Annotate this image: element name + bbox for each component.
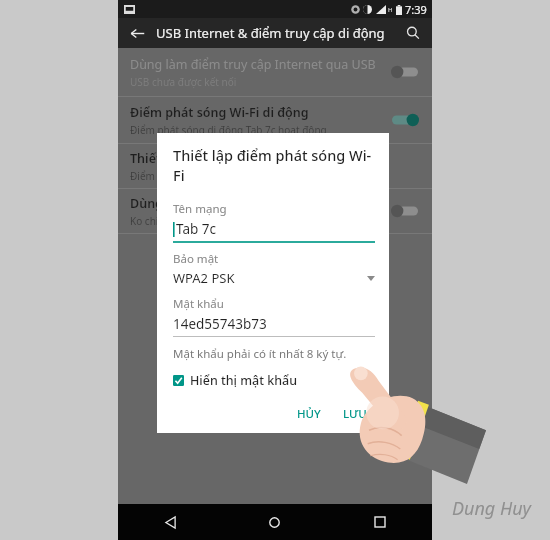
staticText: Thiết lập điểm phát sóng Wi-Fi xyxy=(173,145,375,185)
staticText: USB chưa được kết nối xyxy=(130,75,237,89)
staticText: Tab 7c xyxy=(176,220,217,238)
button[interactable]: WPA2 PSK xyxy=(173,269,375,287)
staticText: USB Internet & điểm truy cập di động xyxy=(156,24,385,42)
staticText: Điểm phát sóng di động Tab 7c hoạt động xyxy=(130,123,327,137)
staticText: Dùng làm điểm truy cập Internet qua USB xyxy=(130,56,376,73)
staticText: 14ed55743b73 xyxy=(173,315,267,333)
button[interactable]: HỦY xyxy=(289,401,329,427)
button[interactable]: Search xyxy=(394,18,432,48)
staticText: Mật khẩu phải có ít nhất 8 ký tự. xyxy=(173,346,347,362)
button[interactable]: Dùng làm điểm truy cập Bluetooth xyxy=(118,189,432,233)
button[interactable]: Home xyxy=(222,504,327,540)
staticText: H xyxy=(388,6,393,14)
button[interactable]: Back xyxy=(118,18,156,48)
button[interactable]: Thiết lập điểm phát sóng Wi-Fi xyxy=(118,144,432,188)
staticText: WPA2 PSK xyxy=(173,269,235,287)
staticText: Điểm phát sóng Wi-Fi di động xyxy=(130,104,309,121)
staticText: LƯU xyxy=(343,406,367,422)
staticText: Tên mạng xyxy=(173,201,227,217)
staticText: Dùng làm điểm truy cập Bluetooth xyxy=(130,195,341,212)
button[interactable]: Recent apps xyxy=(327,504,432,540)
staticText: Mật khẩu xyxy=(173,296,224,312)
other: Pointing hand xyxy=(350,366,486,500)
staticText: Hiển thị mật khẩu xyxy=(190,372,298,389)
staticText: Ko chia sẻ kết nối Internet xyxy=(130,214,253,228)
button[interactable]: LƯU xyxy=(335,401,375,427)
button[interactable]: Hiển thị mật khẩu xyxy=(173,372,375,389)
button[interactable]: Điểm phát sóng Wi-Fi di động xyxy=(118,97,432,143)
button[interactable]: Dùng làm điểm truy cập Internet qua USB xyxy=(118,48,432,96)
staticText: HỦY xyxy=(297,406,321,422)
button[interactable]: Back xyxy=(118,504,222,540)
button[interactable]: Toggle xyxy=(388,59,422,85)
staticText: Điểm phát sóng Wi-Fi di động xyxy=(130,169,269,183)
button[interactable]: Toggle xyxy=(388,107,422,133)
staticText: Dung Huy xyxy=(452,496,532,521)
button[interactable]: Toggle xyxy=(388,198,422,224)
staticText: 7:39 xyxy=(405,2,427,17)
staticText: Thiết lập điểm phát sóng Wi-Fi xyxy=(130,150,315,167)
staticText: Bảo mật xyxy=(173,251,219,267)
